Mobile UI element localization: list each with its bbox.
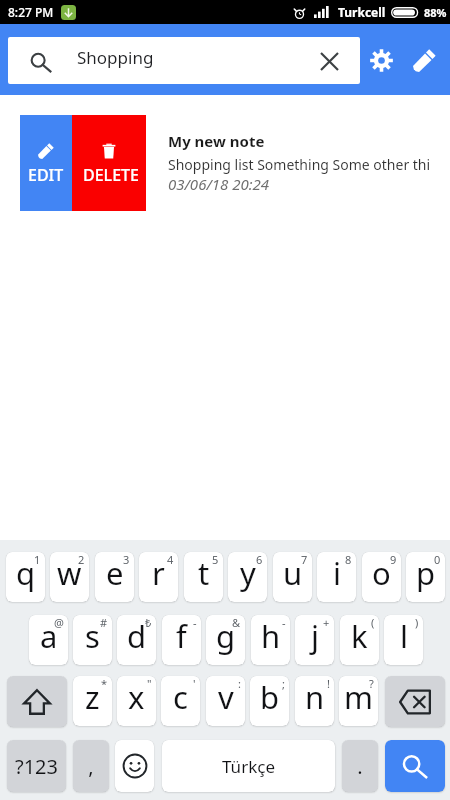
staticText: 3 <box>123 552 130 567</box>
button[interactable]: # <box>73 615 112 665</box>
staticText: 7 <box>301 552 308 567</box>
button[interactable]: - <box>162 615 201 665</box>
staticText: My new note <box>168 131 265 151</box>
button[interactable]: 6 <box>228 552 267 602</box>
staticText: ! <box>327 676 330 691</box>
button[interactable]: My new note <box>168 115 450 211</box>
button[interactable]: 8 <box>317 552 356 602</box>
button[interactable]: @ <box>29 615 68 665</box>
staticText: h <box>261 615 281 657</box>
staticText: l <box>400 615 408 657</box>
staticText: v <box>218 676 234 718</box>
button[interactable]: ' <box>161 676 200 726</box>
staticText: - <box>193 615 197 630</box>
staticText: Türkçe <box>222 755 275 778</box>
staticText: ) <box>415 615 419 630</box>
button[interactable]: * <box>73 676 112 726</box>
button[interactable]: + <box>295 615 334 665</box>
staticText: & <box>232 615 241 630</box>
staticText: p <box>416 552 436 594</box>
staticText: + <box>323 615 330 630</box>
button[interactable]: Shopping <box>8 37 360 84</box>
staticText: i <box>333 552 341 594</box>
staticText: q <box>16 552 36 594</box>
staticText: a <box>40 615 58 657</box>
staticText: n <box>305 676 325 718</box>
staticText: 6 <box>256 552 263 567</box>
button[interactable]: Clear search <box>312 44 346 78</box>
staticText: - <box>282 615 286 630</box>
staticText: 8:27 PM <box>8 4 54 20</box>
button[interactable]: 1 <box>6 552 45 602</box>
staticText: . <box>357 753 363 780</box>
staticText: 03/06/18 20:24 <box>168 174 270 194</box>
button[interactable]: ( <box>340 615 379 665</box>
button[interactable]: , <box>73 740 109 792</box>
button[interactable]: Shift <box>7 676 67 727</box>
staticText: f <box>176 615 187 657</box>
staticText: b <box>260 676 280 718</box>
button[interactable]: " <box>117 676 156 726</box>
staticText: k <box>351 615 368 657</box>
staticText: j <box>311 615 319 657</box>
button[interactable]: Search <box>385 740 445 792</box>
button[interactable]: Settings <box>359 38 403 82</box>
staticText: o <box>372 552 391 594</box>
staticText: 9 <box>390 552 397 567</box>
staticText: u <box>283 552 303 594</box>
staticText: m <box>344 676 373 718</box>
button[interactable]: ) <box>384 615 423 665</box>
staticText: 88% <box>424 5 447 20</box>
button[interactable]: 5 <box>184 552 223 602</box>
staticText: z <box>85 676 100 718</box>
button[interactable]: & <box>206 615 245 665</box>
staticText: 4 <box>167 552 174 567</box>
staticText: x <box>128 676 145 718</box>
staticText: 1 <box>34 552 41 567</box>
button[interactable]: 2 <box>50 552 89 602</box>
staticText: 8 <box>345 552 352 567</box>
staticText: ₺ <box>145 615 152 630</box>
staticText: ; <box>282 676 285 691</box>
button[interactable]: 3 <box>95 552 134 602</box>
button[interactable]: Backspace <box>385 676 445 727</box>
button[interactable]: . <box>342 740 378 792</box>
button[interactable]: New note <box>402 38 446 82</box>
button[interactable]: 0 <box>406 552 445 602</box>
button[interactable]: EDIT <box>20 115 72 211</box>
staticText: : <box>238 676 241 691</box>
button[interactable]: 7 <box>273 552 312 602</box>
staticText: d <box>127 615 147 657</box>
button[interactable]: : <box>206 676 245 726</box>
staticText: s <box>85 615 100 657</box>
staticText: ? <box>369 676 374 691</box>
staticText: ' <box>193 676 196 691</box>
staticText: * <box>101 676 108 691</box>
button[interactable]: Emoji <box>115 740 154 792</box>
staticText: , <box>88 753 94 780</box>
button[interactable]: DELETE <box>72 115 146 211</box>
button[interactable]: Türkçe <box>162 740 335 792</box>
button[interactable]: ? <box>339 676 378 726</box>
staticText: @ <box>54 615 64 630</box>
staticText: Shopping <box>77 46 154 69</box>
staticText: " <box>147 676 152 691</box>
button[interactable]: - <box>251 615 290 665</box>
staticText: Shopping list Something Some other thi <box>168 155 431 174</box>
button[interactable]: 4 <box>139 552 178 602</box>
staticText: ?123 <box>15 753 58 780</box>
button[interactable]: ₺ <box>117 615 156 665</box>
staticText: EDIT <box>28 164 64 186</box>
staticText: c <box>173 676 188 718</box>
staticText: r <box>152 552 165 594</box>
staticText: # <box>100 615 108 630</box>
staticText: 2 <box>78 552 85 567</box>
button[interactable]: ! <box>295 676 334 726</box>
button[interactable]: ?123 <box>7 740 66 792</box>
button[interactable]: 9 <box>362 552 401 602</box>
staticText: e <box>106 552 124 594</box>
staticText: 5 <box>212 552 219 567</box>
staticText: w <box>57 552 82 594</box>
button[interactable]: ; <box>250 676 289 726</box>
staticText: g <box>216 615 236 657</box>
